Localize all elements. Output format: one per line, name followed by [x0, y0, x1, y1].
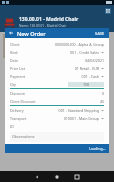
staticText: Loading... [89, 146, 106, 151]
button[interactable]: Home [55, 175, 59, 179]
staticText: Name: Madrid Chair reference [26, 34, 72, 38]
staticText: 010001 - Main Group [63, 116, 99, 121]
staticText: 04/06/2021 [84, 58, 104, 63]
staticText: Client Discount [10, 99, 36, 104]
staticText: Ref#1: 0.0003000052 [26, 44, 58, 48]
staticText: 0 [101, 91, 104, 96]
button[interactable]: Transport [10, 114, 104, 122]
staticText: 001 - Standard Shipping [58, 108, 99, 113]
staticText: Delivery [10, 108, 24, 113]
staticText: SAVE [95, 31, 105, 36]
button[interactable]: Date [10, 56, 104, 64]
staticText: Price List [10, 66, 26, 71]
button[interactable]: Client [10, 40, 104, 48]
button[interactable]: Discount [10, 89, 104, 97]
staticText: 0000000200 - Alpha A. Group [54, 42, 104, 47]
button[interactable]: Qty [10, 80, 104, 89]
button[interactable]: Kind [10, 48, 104, 56]
button[interactable]: Back [8, 30, 14, 36]
button[interactable]: Observations [10, 132, 104, 142]
staticText: 001 - Credit Sales [70, 50, 99, 55]
button[interactable]: Client Discount [10, 97, 104, 106]
staticText: Date [10, 58, 18, 63]
staticText: Dimensions (mm) Width x Height: 85.00 x … [26, 59, 93, 63]
button[interactable]: Loading... [89, 146, 109, 151]
button[interactable]: Recents [75, 175, 79, 179]
staticText: 130.00.01 - Madrid Chair [19, 16, 79, 23]
button[interactable]: Payment [10, 72, 104, 80]
staticText: 45 [99, 99, 104, 104]
staticText: Payment [10, 74, 25, 79]
button[interactable]: SAVE [94, 31, 106, 36]
staticText: 001 - Cash [81, 74, 99, 79]
staticText: 150 [83, 82, 90, 87]
staticText: ID [10, 124, 14, 129]
staticText: 01 Retail - EUR [74, 66, 99, 71]
staticText: Transport [10, 116, 27, 121]
staticText: Name: 130.00.01 - Madrid Chair [19, 24, 67, 28]
button[interactable]: Back [35, 175, 39, 179]
button[interactable]: Price List [10, 64, 104, 72]
button[interactable]: Delivery [10, 106, 104, 114]
staticText: Discount [10, 91, 25, 96]
button[interactable]: ID [10, 122, 104, 130]
staticText: Qty [10, 82, 16, 87]
button[interactable]: Menu [105, 8, 111, 14]
staticText: Client [10, 42, 20, 47]
staticText: Observations [12, 134, 35, 139]
staticText: Kind [10, 50, 18, 55]
staticText: New Order [17, 30, 46, 37]
